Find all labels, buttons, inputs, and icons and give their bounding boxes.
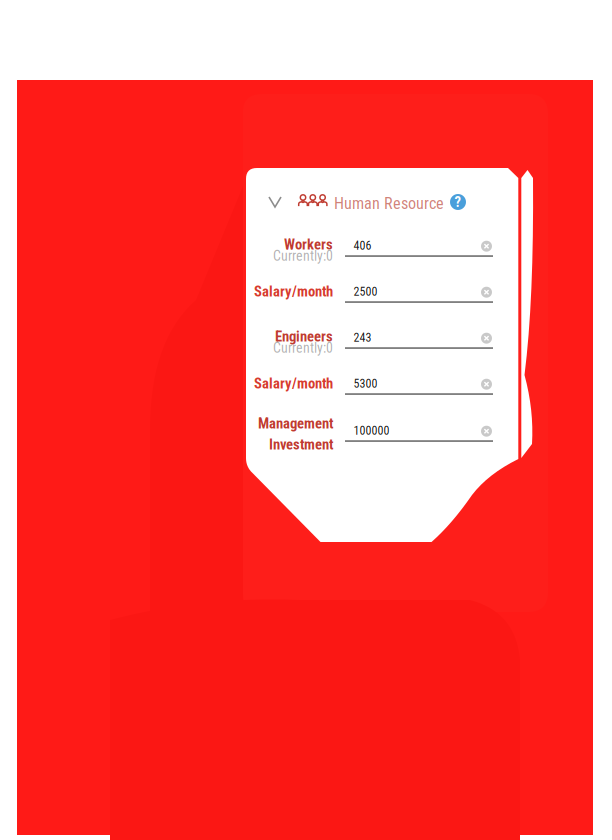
staticText: Salary/month (254, 375, 333, 392)
button[interactable]: Value 100000 (345, 424, 493, 446)
staticText: 406 (353, 239, 371, 253)
button[interactable]: Collapse Human Resource section (265, 193, 285, 211)
button[interactable]: Value 243 (345, 331, 493, 353)
staticText: Management (258, 415, 333, 432)
button[interactable]: Value 406 (345, 239, 493, 261)
button[interactable]: Value 5300 (345, 377, 493, 399)
staticText: ? (454, 193, 461, 211)
staticText: 243 (353, 331, 371, 345)
staticText: Currently:0 (273, 340, 333, 356)
staticText: 5300 (353, 377, 377, 391)
staticText: Human Resource (334, 194, 444, 213)
button[interactable]: Help (450, 194, 466, 210)
button[interactable]: Value 2500 (345, 285, 493, 307)
staticText: Investment (269, 436, 333, 453)
staticText: Engineers (275, 328, 333, 345)
staticText: Salary/month (254, 283, 333, 300)
staticText: Currently:0 (273, 248, 333, 264)
staticText: 2500 (353, 285, 377, 299)
staticText: Workers (284, 236, 333, 253)
staticText: 100000 (353, 424, 389, 438)
